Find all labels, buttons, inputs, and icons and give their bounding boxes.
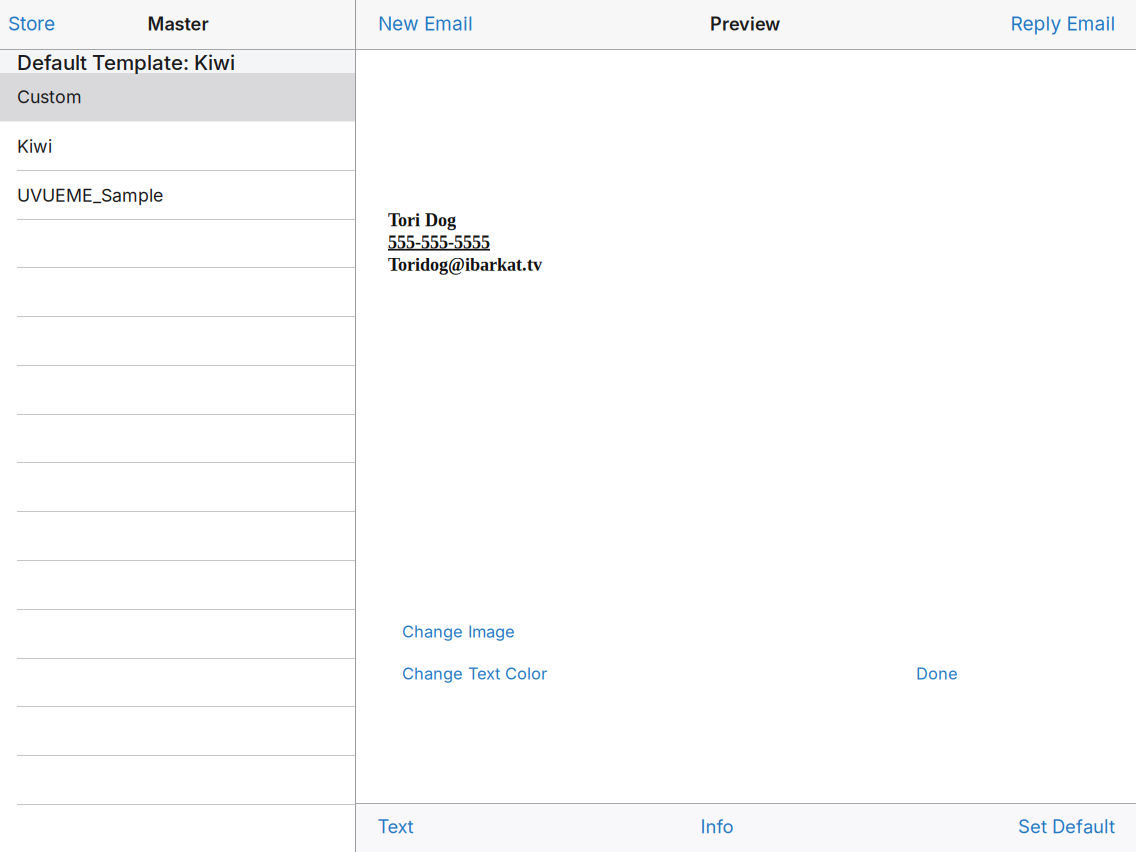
button[interactable]: Custom [0, 72, 355, 121]
staticText: UVUEME_Sample [17, 185, 163, 206]
button[interactable]: Empty template slot [0, 610, 355, 659]
button[interactable]: Info [657, 813, 777, 839]
button[interactable]: UVUEME_Sample [0, 171, 355, 220]
button[interactable]: Empty template slot [0, 220, 355, 269]
staticText: Custom [17, 86, 82, 108]
button[interactable]: Kiwi [0, 122, 355, 171]
button[interactable]: Change Image [402, 621, 522, 642]
button[interactable]: New Email [378, 8, 498, 38]
button[interactable]: Set Default [975, 813, 1115, 839]
button[interactable]: Empty template slot [0, 512, 355, 561]
button[interactable]: Empty template slot [0, 415, 355, 464]
button[interactable]: Empty template slot [0, 317, 355, 366]
button[interactable]: Store [8, 8, 78, 38]
button[interactable]: Empty template slot [0, 463, 355, 512]
button[interactable]: Reply Email [975, 8, 1115, 38]
button[interactable]: Empty template slot [0, 659, 355, 708]
staticText: New Email [378, 12, 473, 35]
staticText: Toridog@ibarkat.tv [388, 255, 542, 275]
staticText: Master [147, 13, 208, 35]
staticText: Change Image [402, 622, 515, 641]
button[interactable]: Empty template slot [0, 707, 355, 756]
staticText: Info [700, 815, 733, 838]
button[interactable]: Empty template slot [0, 366, 355, 415]
staticText: Reply Email [1010, 12, 1115, 35]
button[interactable]: Text [377, 813, 457, 839]
staticText: Preview [710, 13, 780, 35]
staticText: Done [916, 664, 958, 683]
staticText: Store [8, 12, 55, 35]
staticText: Set Default [1018, 815, 1115, 838]
staticText: Change Text Color [402, 664, 547, 683]
staticText: Kiwi [17, 136, 52, 157]
button[interactable]: Change Text Color [402, 663, 552, 684]
button[interactable]: Empty template slot [0, 561, 355, 610]
button[interactable]: Empty template slot [0, 756, 355, 805]
button[interactable]: Done [916, 663, 976, 684]
button[interactable]: Empty template slot [0, 268, 355, 317]
staticText: Default Template: Kiwi [17, 50, 235, 75]
staticText: 555-555-5555 [388, 232, 490, 252]
staticText: Text [377, 815, 413, 838]
staticText: Tori Dog [388, 210, 456, 230]
